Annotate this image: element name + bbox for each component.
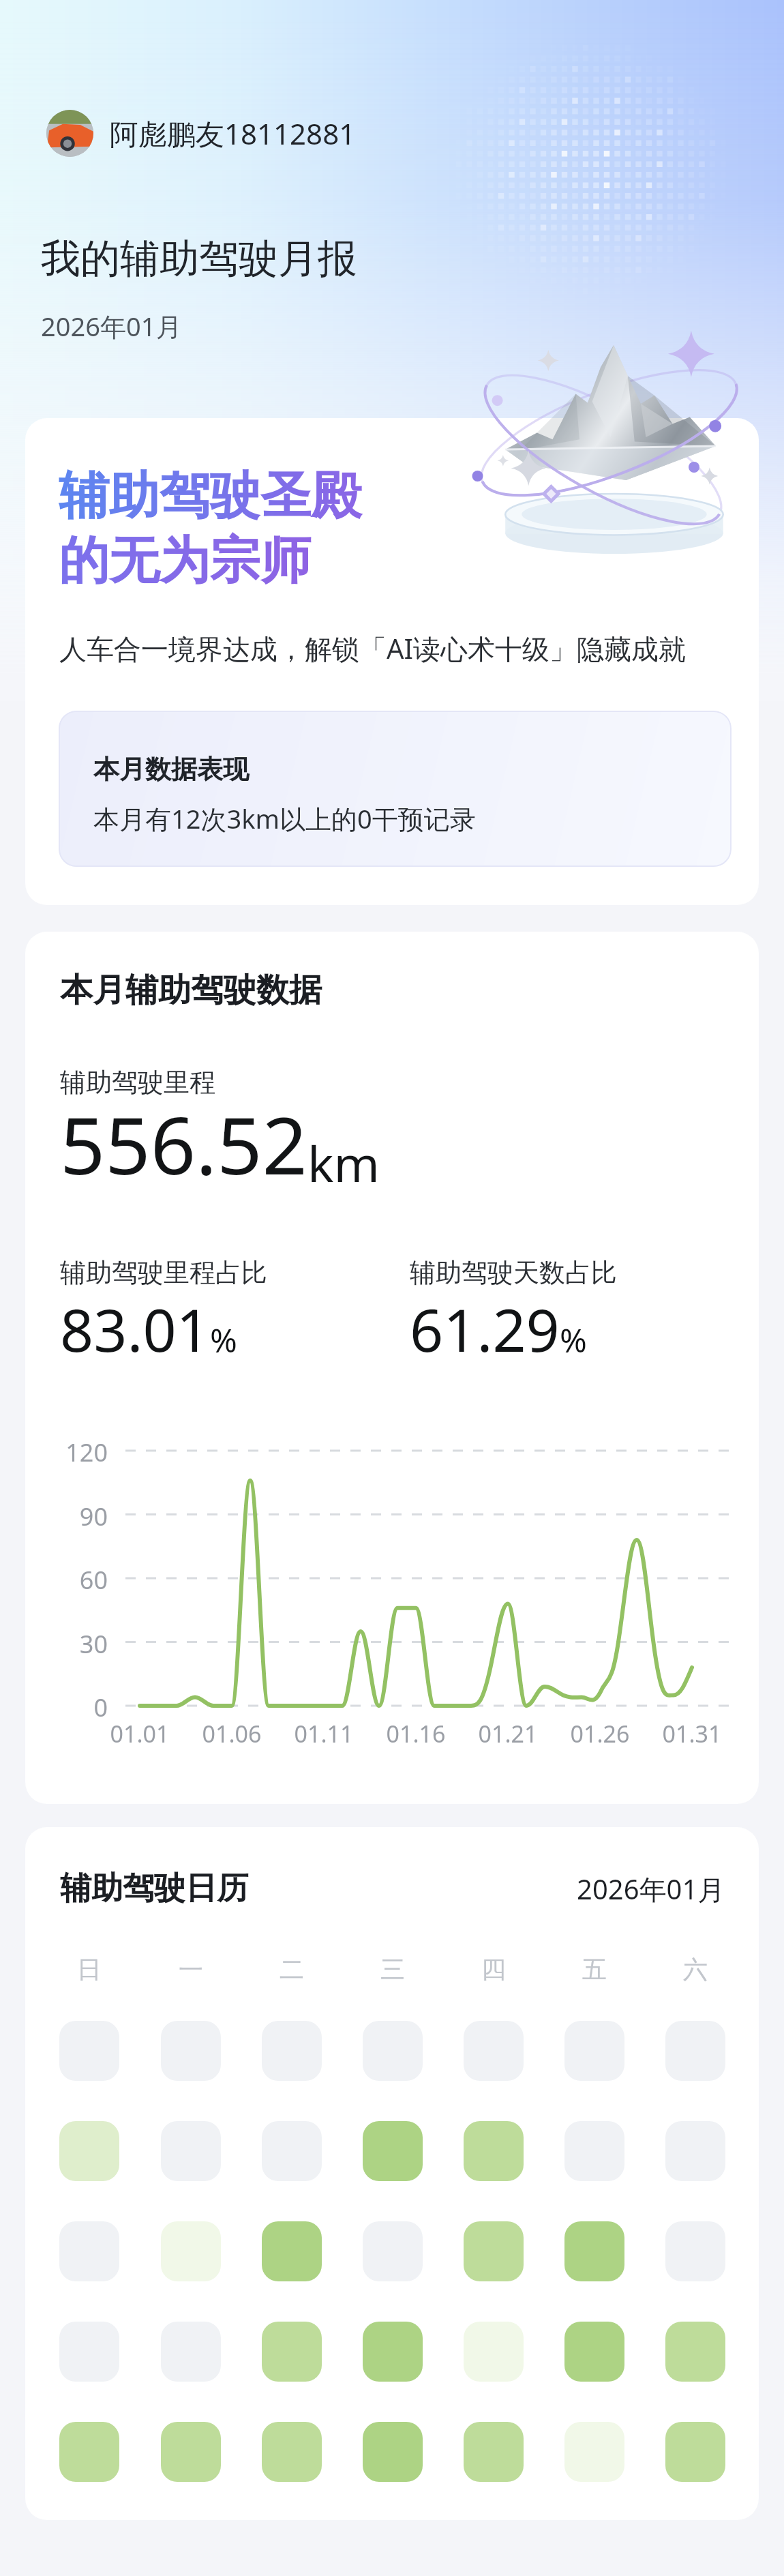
staticText: 辅助驾驶圣殿 (59, 464, 361, 528)
staticText: 556.52 (60, 1090, 307, 1198)
staticText: 2026年01月 (577, 1870, 725, 1908)
staticText: 01.11 (280, 1718, 368, 1749)
staticText: 01.16 (372, 1718, 460, 1749)
staticText: 61.29 (410, 1289, 560, 1369)
staticText: 60 (25, 1563, 108, 1597)
button[interactable] (25, 418, 759, 905)
staticText: 01.26 (556, 1718, 644, 1749)
staticText: 三 (380, 1954, 405, 1985)
staticText: 本月有12次3km以上的0干预记录 (93, 801, 476, 836)
staticText: 01.21 (464, 1718, 552, 1749)
staticText: 六 (683, 1954, 708, 1985)
button[interactable]: 辅助驾驶日历 (25, 1827, 759, 2520)
staticText: 辅助驾驶日历 (60, 1869, 248, 1908)
staticText: 二 (280, 1954, 304, 1985)
staticText: 辅助驾驶天数占比 (410, 1256, 617, 1289)
staticText: 0 (25, 1691, 108, 1724)
staticText: 01.31 (648, 1718, 736, 1749)
staticText: 01.01 (95, 1718, 184, 1749)
staticText: % (210, 1318, 237, 1362)
staticText: 的无为宗师 (59, 529, 311, 593)
staticText: 120 (25, 1436, 108, 1469)
staticText: 01.06 (187, 1718, 276, 1749)
staticText: 30 (25, 1627, 108, 1661)
staticText: 83.01 (60, 1289, 210, 1369)
staticText: 辅助驾驶里程 (60, 1066, 215, 1099)
button[interactable]: 本月辅助驾驶数据 (25, 932, 759, 1804)
staticText: 一 (179, 1954, 203, 1985)
staticText: 90 (25, 1500, 108, 1533)
staticText: 日 (77, 1954, 102, 1985)
staticText: 我的辅助驾驶月报 (41, 234, 357, 284)
staticText: 2026年01月 (41, 308, 182, 344)
staticText: 辅助驾驶里程占比 (60, 1256, 267, 1289)
staticText: 四 (481, 1954, 506, 1985)
staticText: 五 (582, 1954, 607, 1985)
staticText: km (307, 1129, 380, 1196)
staticText: 本月辅助驾驶数据 (60, 970, 322, 1011)
staticText: % (560, 1318, 587, 1362)
staticText: 本月数据表现 (93, 753, 249, 786)
staticText: 阿彪鹏友18112881 (110, 114, 356, 153)
staticText: 人车合一境界达成，解锁「AI读心术十级」隐藏成就 (59, 630, 687, 667)
